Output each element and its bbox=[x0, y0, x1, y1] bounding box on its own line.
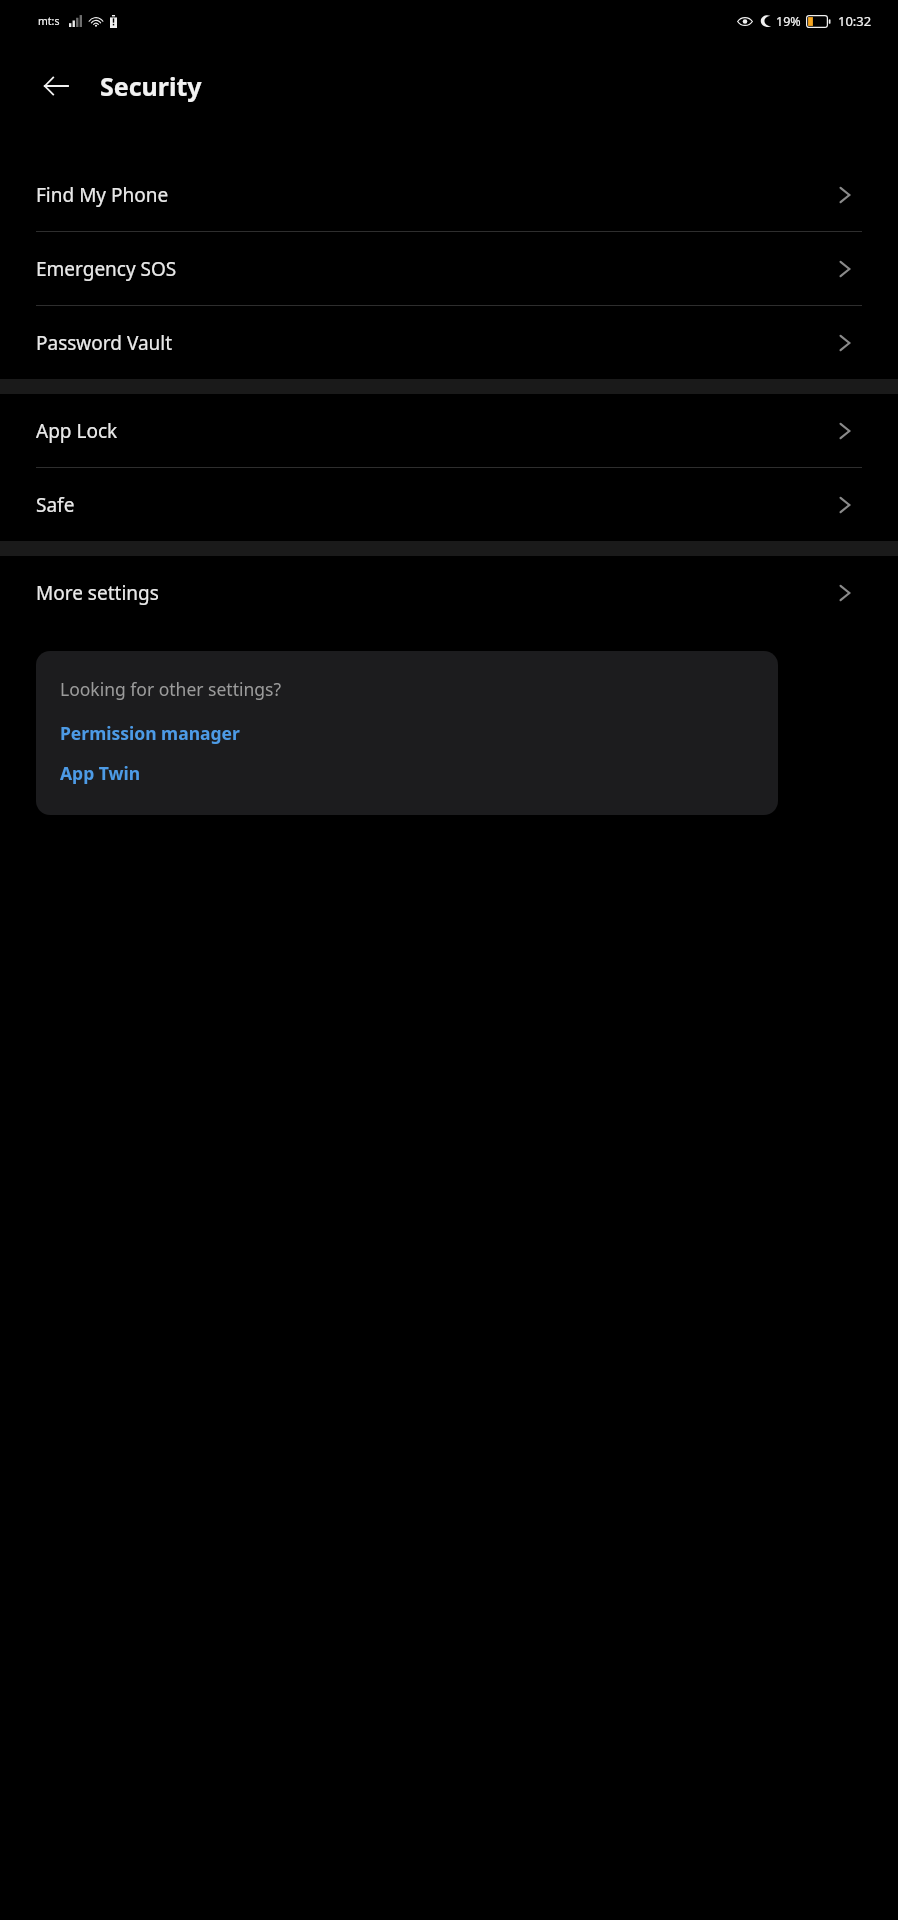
button[interactable]: App Twin bbox=[60, 761, 141, 785]
button[interactable]: Permission manager bbox=[60, 721, 240, 745]
staticText: Security bbox=[100, 69, 202, 103]
staticText: mt:s bbox=[38, 14, 60, 28]
staticText: Find My Phone bbox=[36, 182, 169, 208]
staticText: Safe bbox=[36, 492, 75, 518]
staticText: Looking for other settings? bbox=[60, 677, 282, 701]
button[interactable]: More settings bbox=[0, 556, 898, 629]
button[interactable]: Safe bbox=[0, 468, 898, 541]
staticText: Emergency SOS bbox=[36, 256, 177, 282]
staticText: Password Vault bbox=[36, 330, 173, 356]
staticText: App Twin bbox=[60, 761, 141, 785]
button[interactable]: App Lock bbox=[0, 394, 898, 467]
staticText: 10:32 bbox=[838, 12, 872, 30]
button[interactable]: Back bbox=[30, 60, 82, 112]
staticText: Permission manager bbox=[60, 721, 240, 745]
button[interactable]: Emergency SOS bbox=[0, 232, 898, 305]
button[interactable]: Find My Phone bbox=[0, 158, 898, 231]
staticText: More settings bbox=[36, 580, 159, 606]
staticText: App Lock bbox=[36, 418, 118, 444]
staticText: 19% bbox=[776, 13, 801, 30]
button[interactable]: Password Vault bbox=[0, 306, 898, 379]
